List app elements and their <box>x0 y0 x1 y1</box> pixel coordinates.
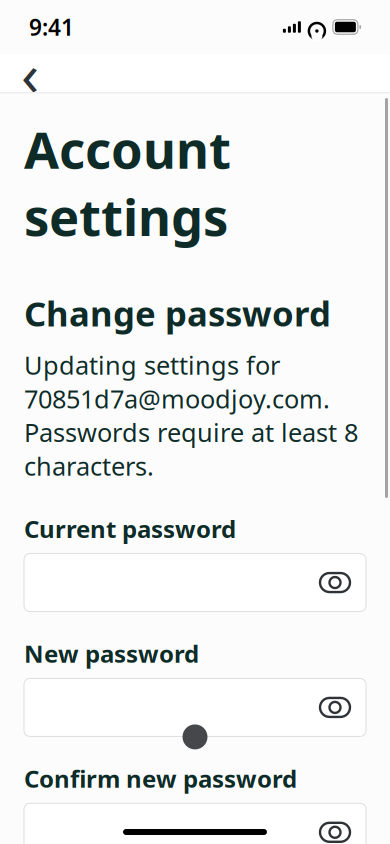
button[interactable]: Confirm new password <box>24 803 366 844</box>
button[interactable]: New password <box>24 678 366 736</box>
staticText: New password <box>24 637 199 669</box>
button[interactable]: Back <box>8 51 52 95</box>
staticText: Account settings <box>24 115 231 250</box>
staticText: Updating settings for 70851d7a@moodjoy.c… <box>24 348 358 483</box>
staticText: 9:41 <box>29 12 74 42</box>
staticText: Change password <box>24 290 331 336</box>
button[interactable]: Current password <box>24 553 366 611</box>
staticText: ‹ <box>21 34 39 112</box>
staticText: Current password <box>24 513 236 545</box>
staticText: Confirm new password <box>24 762 297 794</box>
